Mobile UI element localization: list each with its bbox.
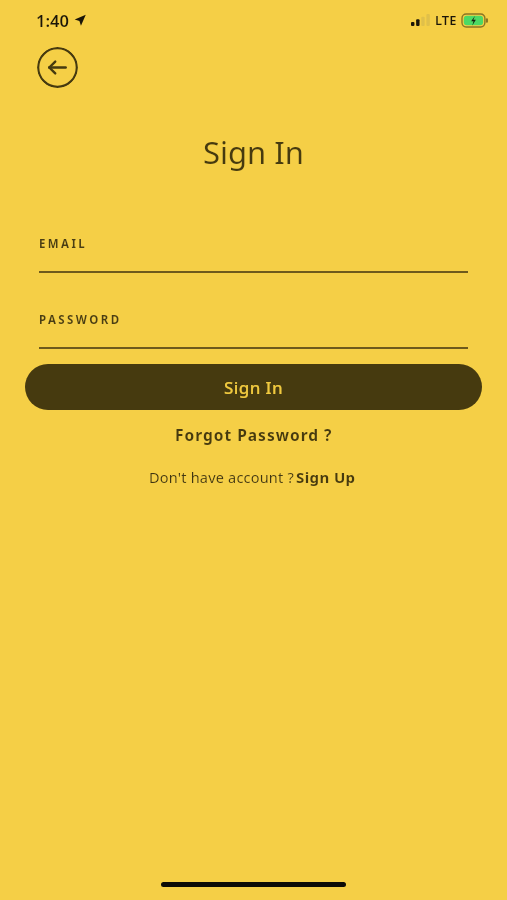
staticText: EMAIL	[39, 236, 88, 252]
button[interactable]: Back	[37, 47, 78, 88]
staticText: Sign In	[203, 131, 304, 173]
staticText: LTE	[435, 11, 457, 29]
staticText: Sign Up	[296, 467, 356, 487]
staticText: Sign In	[224, 376, 284, 399]
staticText: Forgot Password ?	[175, 424, 333, 445]
staticText: PASSWORD	[39, 312, 122, 328]
staticText: 1:40	[36, 9, 69, 31]
staticText: Don't have account ?	[149, 467, 294, 487]
button[interactable]: Sign In	[25, 364, 482, 410]
button[interactable]: Forgot Password ?	[169, 421, 339, 448]
button[interactable]: Sign Up	[294, 465, 358, 489]
